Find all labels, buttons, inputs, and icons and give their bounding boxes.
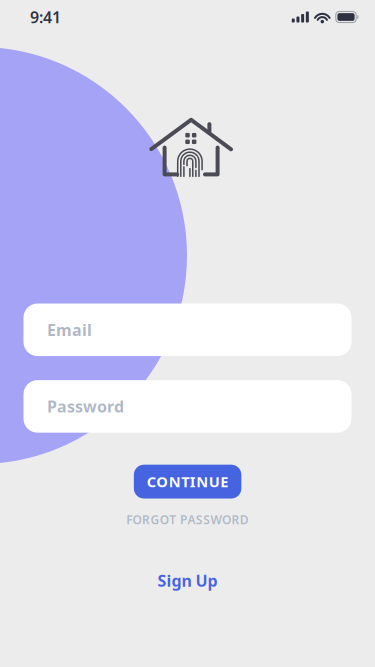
staticText: FORGOT PASSWORD xyxy=(126,511,249,527)
staticText: Email xyxy=(47,319,92,340)
staticText: 9:41 xyxy=(30,6,61,28)
staticText: Sign Up xyxy=(157,570,217,591)
button[interactable]: CONTINUE xyxy=(134,465,241,498)
button[interactable]: Sign Up xyxy=(149,562,225,599)
button[interactable]: Email xyxy=(23,304,351,356)
button[interactable]: FORGOT PASSWORD xyxy=(120,505,255,533)
staticText: CONTINUE xyxy=(147,472,228,491)
button[interactable]: Password xyxy=(23,380,351,433)
staticText: Password xyxy=(47,396,124,417)
